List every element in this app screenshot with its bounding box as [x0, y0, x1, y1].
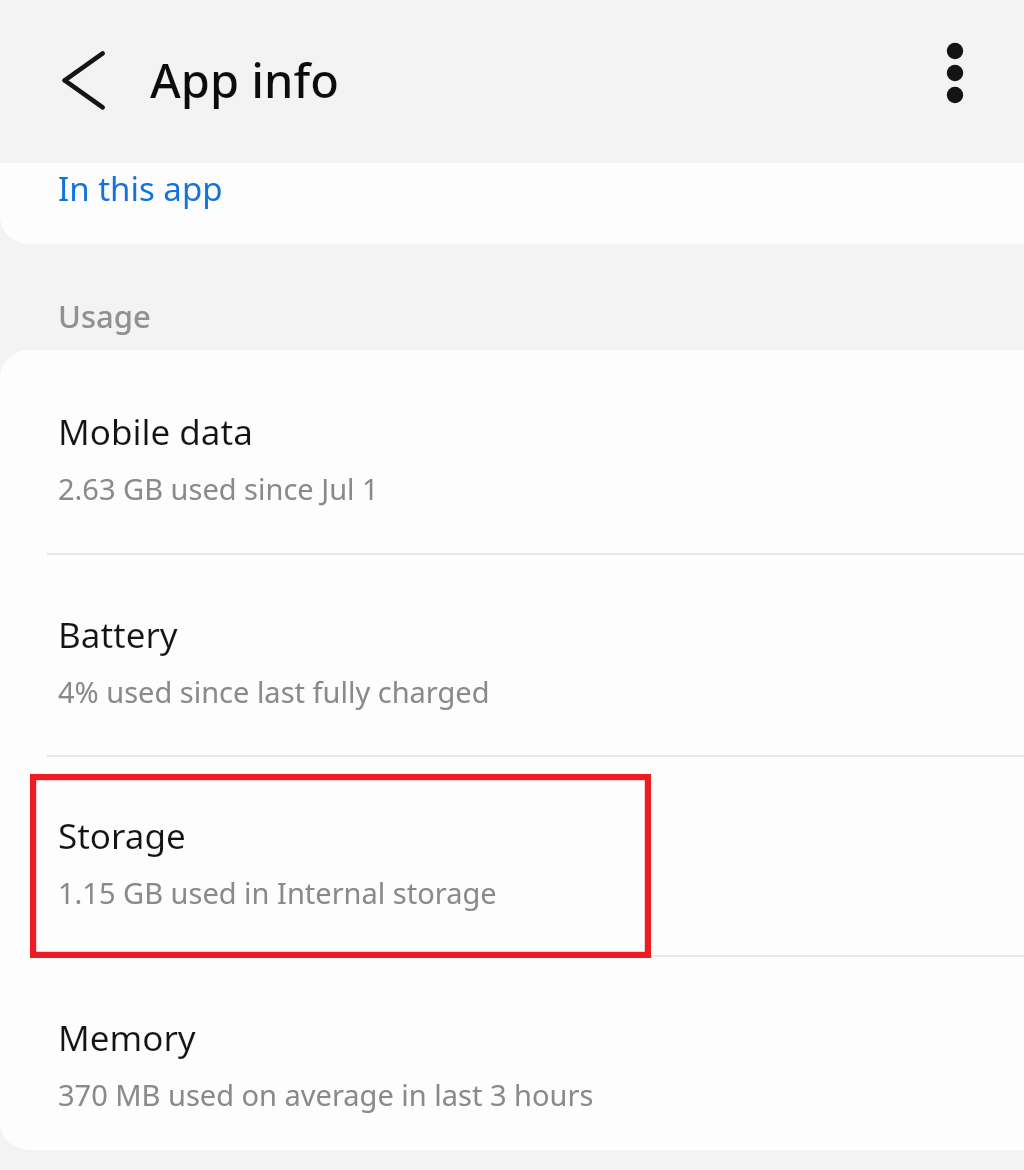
staticText: 370 MB used on average in last 3 hours [58, 1075, 594, 1114]
staticText: Storage [58, 812, 186, 860]
staticText: 2.63 GB used since Jul 1 [58, 469, 379, 508]
staticText: Usage [58, 295, 151, 337]
staticText: Battery [58, 611, 178, 659]
button[interactable]: Memory [0, 957, 1024, 1150]
button[interactable]: Mobile data [0, 350, 1024, 553]
staticText: 1.15 GB used in Internal storage [58, 873, 497, 912]
staticText: In this app [58, 166, 223, 211]
button[interactable]: In this app [0, 163, 1024, 244]
staticText: App info [150, 48, 339, 112]
button[interactable]: More options [912, 30, 998, 116]
button[interactable]: Storage [0, 757, 1024, 955]
staticText: Mobile data [58, 408, 253, 456]
staticText: Memory [58, 1014, 196, 1062]
button[interactable]: Navigate up [40, 40, 124, 124]
staticText: 4% used since last fully charged [58, 672, 490, 711]
button[interactable]: Battery [0, 555, 1024, 755]
